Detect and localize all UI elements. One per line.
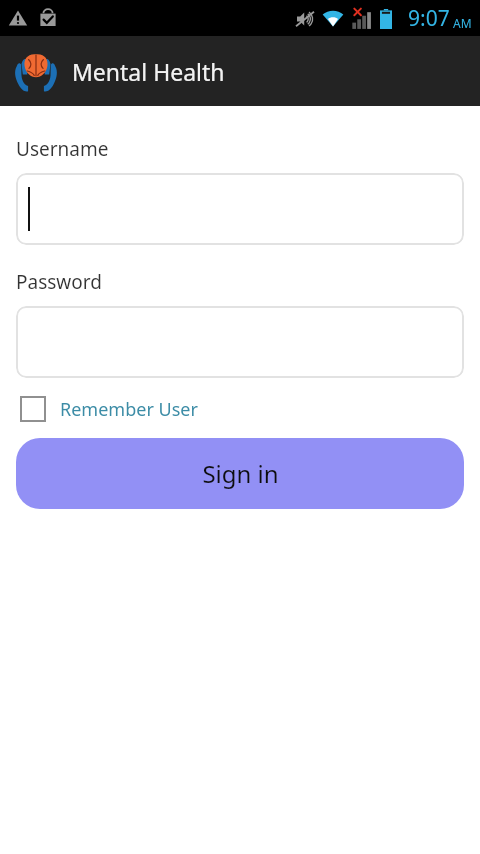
button[interactable]: Sign in [16, 438, 464, 509]
staticText: 9:07 [408, 4, 450, 33]
staticText: Mental Health [72, 56, 225, 87]
staticText: Remember User [60, 397, 198, 422]
staticText: Sign in [202, 457, 279, 490]
button[interactable] [16, 173, 464, 245]
button[interactable] [16, 306, 464, 378]
button[interactable]: Remember User [20, 396, 198, 422]
staticText: Username [16, 136, 109, 162]
staticText: AM [453, 15, 472, 31]
staticText: Password [16, 269, 102, 295]
